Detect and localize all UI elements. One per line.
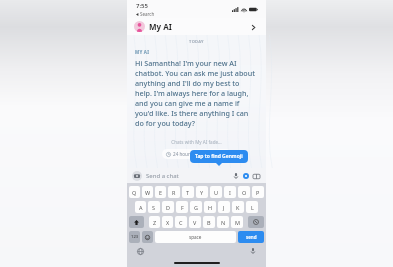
staticText: G xyxy=(194,204,199,211)
staticText: V xyxy=(193,219,197,226)
button[interactable]: F xyxy=(176,201,188,213)
button[interactable]: My AI xyxy=(127,18,266,35)
button[interactable]: Voice message xyxy=(231,171,241,181)
button[interactable]: D xyxy=(162,201,174,213)
staticText: O xyxy=(242,189,247,196)
staticText: F xyxy=(181,204,184,211)
button[interactable]: G xyxy=(190,201,202,213)
staticText: U xyxy=(214,189,219,196)
staticText: L xyxy=(251,204,254,211)
button[interactable]: K xyxy=(232,201,244,213)
button[interactable]: A xyxy=(135,201,146,213)
button[interactable]: W xyxy=(142,186,153,198)
button[interactable]: 24 hours after viewing xyxy=(162,149,231,159)
button[interactable]: 123 xyxy=(129,231,140,243)
button[interactable]: space xyxy=(155,231,236,243)
staticText: C xyxy=(179,219,183,226)
staticText: Z xyxy=(153,219,157,226)
staticText: 7:55 xyxy=(136,2,148,10)
staticText: I xyxy=(229,189,231,196)
button[interactable]: C xyxy=(175,216,187,228)
button[interactable]: S xyxy=(148,201,160,213)
staticText: D xyxy=(166,204,171,211)
staticText: K xyxy=(236,204,240,211)
staticText: Tap to find Genmoji xyxy=(195,153,243,160)
staticText: X xyxy=(166,219,170,226)
staticText: J xyxy=(223,204,225,211)
button[interactable]: J xyxy=(218,201,230,213)
button[interactable]: P xyxy=(252,186,264,198)
staticText: P xyxy=(256,189,260,196)
staticText: TODAY xyxy=(127,39,266,44)
button[interactable]: Emoji xyxy=(142,231,153,243)
staticText: MY AI xyxy=(135,49,150,55)
staticText: T xyxy=(186,189,190,196)
button[interactable]: M xyxy=(231,216,243,228)
staticText: Q xyxy=(132,189,137,196)
staticText: B xyxy=(207,219,211,226)
staticText: send xyxy=(246,234,257,240)
button[interactable]: Camera xyxy=(132,171,142,181)
button[interactable]: N xyxy=(217,216,229,228)
staticText: Search xyxy=(140,11,155,17)
staticText: E xyxy=(159,189,163,196)
staticText: R xyxy=(172,189,176,196)
button[interactable]: Tap to find Genmoji xyxy=(190,150,248,163)
button[interactable]: Stickers xyxy=(241,171,251,181)
staticText: A xyxy=(139,204,143,211)
button[interactable]: Change keyboard xyxy=(135,246,145,256)
button[interactable]: Saved items xyxy=(251,171,261,181)
staticText: 123 xyxy=(131,234,139,240)
button[interactable]: E xyxy=(155,186,166,198)
button[interactable]: Open chat details xyxy=(247,21,259,33)
button[interactable]: Q xyxy=(129,186,140,198)
staticText: Chats with My AI fade… xyxy=(127,139,266,145)
button[interactable]: X xyxy=(162,216,173,228)
staticText: W xyxy=(145,189,151,196)
button[interactable]: B xyxy=(203,216,215,228)
button[interactable]: Send a chat xyxy=(146,172,231,180)
button[interactable]: Y xyxy=(196,186,208,198)
staticText: H xyxy=(208,204,213,211)
staticText: N xyxy=(221,219,226,226)
staticText: space xyxy=(189,234,202,240)
button[interactable]: V xyxy=(189,216,201,228)
button[interactable]: send xyxy=(238,231,264,243)
button[interactable]: R xyxy=(168,186,180,198)
button[interactable]: O xyxy=(238,186,250,198)
button[interactable]: L xyxy=(246,201,258,213)
button[interactable]: T xyxy=(182,186,194,198)
staticText: My AI xyxy=(149,21,172,32)
staticText: Y xyxy=(200,189,204,196)
button[interactable]: Backspace xyxy=(248,216,264,228)
staticText: 24 hours after viewing xyxy=(173,151,222,157)
staticText: Send a chat xyxy=(146,172,179,180)
button[interactable]: U xyxy=(210,186,222,198)
staticText: S xyxy=(152,204,156,211)
button[interactable]: H xyxy=(204,201,216,213)
staticText: Hi Samantha! I'm your new AI chatbot. Yo… xyxy=(135,58,258,128)
button[interactable]: Dictation xyxy=(248,246,258,256)
button[interactable]: Shift xyxy=(129,216,144,228)
staticText: M xyxy=(235,219,240,226)
button[interactable]: I xyxy=(224,186,236,198)
button[interactable]: Z xyxy=(149,216,160,228)
